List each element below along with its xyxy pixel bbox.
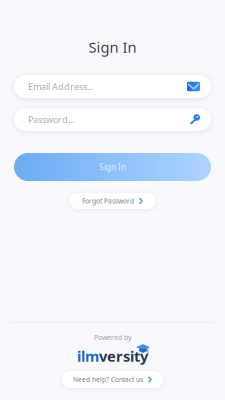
staticText: Need help? Contact us	[73, 375, 143, 384]
staticText: Sign In	[99, 161, 126, 173]
staticText: Forgot Password	[82, 196, 134, 205]
staticText: Sign In	[88, 37, 136, 57]
button[interactable]: Sign In	[14, 153, 211, 181]
staticText: versity	[99, 346, 148, 366]
staticText: Email Address...	[28, 80, 93, 93]
button[interactable]: Need help? Contact us	[62, 371, 163, 388]
button[interactable]: Forgot Password	[69, 193, 155, 209]
staticText: ilm	[77, 346, 99, 366]
staticText: Powered by	[94, 333, 131, 342]
staticText: Password...	[28, 113, 74, 126]
